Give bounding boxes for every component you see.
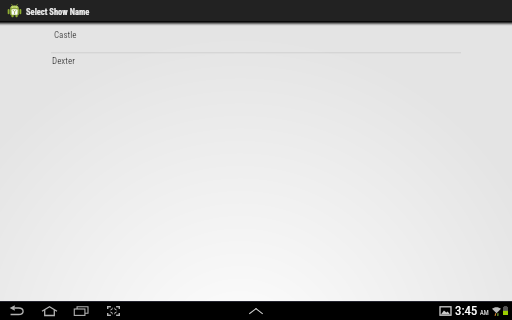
button[interactable]: Screenshot bbox=[97, 301, 129, 320]
staticText: Dexter bbox=[52, 56, 75, 67]
button[interactable]: Select Show Name bbox=[0, 0, 89, 21]
button[interactable]: Recent apps bbox=[65, 301, 97, 320]
button[interactable]: Home bbox=[33, 301, 65, 320]
button[interactable]: Expand notifications bbox=[246, 301, 266, 320]
staticText: AM bbox=[480, 309, 489, 317]
staticText: Castle bbox=[54, 30, 77, 41]
button[interactable]: Dexter bbox=[0, 54, 512, 70]
staticText: 3:45 bbox=[455, 303, 478, 318]
button[interactable]: Back bbox=[1, 301, 33, 320]
button[interactable]: Castle bbox=[0, 21, 512, 52]
staticText: Select Show Name bbox=[26, 7, 90, 17]
